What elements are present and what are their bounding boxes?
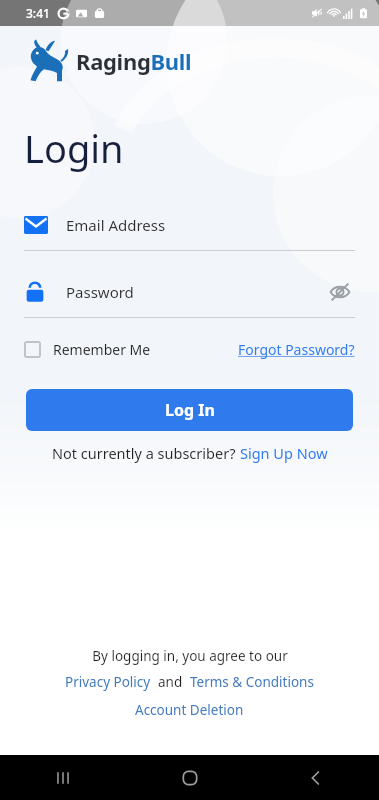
staticText: Log In (165, 399, 215, 421)
staticText: Remember Me (53, 340, 151, 359)
button[interactable]: Email Address (24, 208, 355, 242)
staticText: 3:41 (26, 5, 50, 21)
staticText: Forgot Password? (238, 340, 355, 359)
button[interactable]: Back (292, 755, 340, 800)
staticText: Privacy Policy (65, 673, 151, 691)
staticText: Account Deletion (135, 701, 244, 719)
staticText: Not currently a subscriber? (52, 443, 240, 463)
button[interactable]: Log In (26, 389, 353, 431)
staticText: and (151, 673, 190, 691)
staticText: Sign Up Now (240, 443, 328, 463)
button[interactable]: Sign Up Now (240, 443, 328, 463)
button[interactable]: Forgot Password? (238, 336, 355, 363)
staticText: By logging in, you agree to our (92, 647, 288, 665)
button[interactable]: Account Deletion (135, 701, 244, 719)
button[interactable]: Recent apps (39, 755, 87, 800)
other: RagingBull logo (22, 38, 72, 84)
staticText: RagingBull (76, 46, 192, 76)
staticText: Terms & Conditions (190, 673, 314, 691)
button[interactable]: Home (166, 755, 214, 800)
staticText: Password (66, 282, 134, 302)
button[interactable]: Terms & Conditions (190, 673, 314, 691)
button[interactable]: Show password (325, 277, 355, 307)
button[interactable]: Privacy Policy (65, 673, 151, 691)
button[interactable]: Password (24, 281, 325, 303)
staticText: Email Address (66, 215, 166, 235)
staticText: Login (24, 122, 124, 174)
button[interactable]: Remember Me (24, 336, 151, 363)
